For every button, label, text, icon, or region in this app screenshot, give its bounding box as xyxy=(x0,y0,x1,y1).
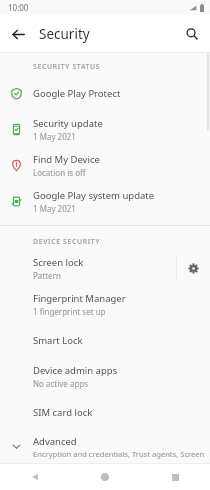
staticText: Encryption and credentials, Trust agents… xyxy=(33,449,206,459)
staticText: Advanced xyxy=(33,435,77,448)
button[interactable]: SIM card lock xyxy=(0,394,210,430)
button[interactable]: Screen lock xyxy=(0,250,176,286)
button[interactable]: Screen lock settings xyxy=(177,250,210,286)
staticText: No active apps xyxy=(33,378,89,389)
button[interactable]: Recent apps xyxy=(140,464,210,490)
staticText: SECURITY STATUS xyxy=(33,62,101,71)
button[interactable]: Device admin apps xyxy=(0,358,210,394)
staticText: Security xyxy=(39,25,90,43)
button[interactable]: Home xyxy=(70,464,140,490)
staticText: Security update xyxy=(33,117,103,130)
button[interactable]: Google Play Protect xyxy=(0,75,210,111)
staticText: Google Play system update xyxy=(33,189,155,202)
button[interactable]: Back xyxy=(0,16,36,52)
button[interactable]: Back xyxy=(0,464,70,490)
button[interactable]: Advanced xyxy=(0,430,210,463)
staticText: SIM card lock xyxy=(33,406,93,419)
staticText: DEVICE SECURITY xyxy=(33,237,101,246)
staticText: Pattern xyxy=(33,270,61,281)
staticText: 1 May 2021 xyxy=(33,131,76,142)
staticText: 1 fingerprint set up xyxy=(33,306,106,317)
staticText: Google Play Protect xyxy=(33,87,121,100)
button[interactable]: Fingerprint Manager xyxy=(0,286,210,322)
staticText: Fingerprint Manager xyxy=(33,292,126,305)
staticText: 1 May 2021 xyxy=(33,203,76,214)
staticText: Screen lock xyxy=(33,256,84,269)
button[interactable]: Google Play system update xyxy=(0,183,210,219)
staticText: Find My Device xyxy=(33,153,100,166)
staticText: Device admin apps xyxy=(33,364,118,377)
staticText: Location is off xyxy=(33,167,86,178)
staticText: Smart Lock xyxy=(33,334,83,347)
button[interactable]: Smart Lock xyxy=(0,322,210,358)
button[interactable]: Security update xyxy=(0,111,210,147)
staticText: 10:00 xyxy=(8,2,29,13)
button[interactable]: Find My Device xyxy=(0,147,210,183)
button[interactable]: Search xyxy=(174,16,210,52)
